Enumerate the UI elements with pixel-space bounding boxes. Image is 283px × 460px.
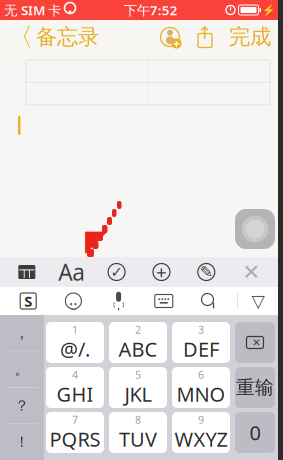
staticText: JKL (124, 381, 151, 407)
staticText: DEF (183, 336, 219, 362)
button[interactable]: 6 (172, 367, 230, 408)
staticText: MNO (176, 381, 225, 407)
button[interactable]: 语音输入 (102, 287, 136, 315)
staticText: 5 (135, 368, 141, 382)
button[interactable]: 手写 (188, 257, 224, 287)
button[interactable]: 清单 (99, 257, 135, 287)
button[interactable]: 共享 (188, 21, 222, 52)
staticText: ✓ (111, 264, 123, 280)
button[interactable]: 5 (109, 367, 167, 408)
staticText: + (173, 35, 180, 51)
button[interactable]: 辅助触控 (235, 209, 275, 249)
button[interactable]: 7 (46, 412, 104, 453)
staticText: ✕ (252, 336, 261, 348)
staticText: 7 (72, 413, 78, 427)
staticText: 完成 (229, 24, 271, 50)
button[interactable]: ， (0, 315, 44, 351)
staticText: 6 (198, 368, 204, 382)
staticText: ？ (14, 397, 29, 415)
staticText: 2 (135, 323, 141, 337)
staticText: 1 (72, 323, 78, 337)
button[interactable]: 键盘设置 (147, 287, 181, 315)
staticText: S (24, 291, 32, 311)
staticText: GHI (56, 381, 93, 407)
button[interactable]: 删除 (235, 322, 275, 363)
button[interactable]: ？ (0, 388, 44, 423)
button[interactable]: 添加协作者 (152, 20, 188, 54)
staticText: WXYZ (174, 426, 227, 452)
staticText: ！ (14, 433, 29, 451)
staticText: TUV (119, 426, 157, 452)
staticText: ABC (118, 336, 157, 362)
button[interactable]: 关闭 (233, 257, 269, 287)
button[interactable]: 0 (235, 412, 275, 453)
staticText: ▽ (251, 291, 264, 311)
button[interactable]: 4 (46, 367, 104, 408)
staticText: Aa (58, 257, 85, 287)
staticText: + (156, 260, 167, 284)
staticText: 。 (14, 360, 29, 378)
button[interactable]: 格式 (54, 257, 90, 287)
staticText: ↑ (197, 23, 212, 43)
button[interactable]: 完成 (222, 19, 278, 55)
button[interactable]: 添加 (143, 257, 179, 287)
staticText: ， (14, 324, 29, 342)
staticText: ⚡ (262, 4, 275, 16)
staticText: 备忘录 (36, 24, 99, 50)
button[interactable]: 9 (172, 412, 230, 453)
button[interactable]: 3 (172, 322, 230, 363)
button[interactable]: 2 (109, 322, 167, 363)
button[interactable]: ！ (0, 424, 44, 460)
staticText: 3 (198, 323, 204, 337)
staticText: ◤ (85, 224, 108, 257)
button[interactable]: 表情 (56, 287, 90, 315)
staticText: 4 (72, 368, 78, 382)
button[interactable]: 。 (0, 352, 44, 387)
staticText: 重输 (236, 376, 274, 399)
button[interactable]: 表格 (9, 257, 45, 287)
button[interactable]: 8 (109, 412, 167, 453)
button[interactable]: 〈 (0, 16, 99, 57)
button[interactable]: 搜狗输入法 (11, 287, 45, 315)
button[interactable]: 重输 (235, 367, 275, 408)
staticText: ✕ (242, 260, 260, 284)
button[interactable]: 收起键盘 (238, 287, 278, 315)
staticText: 〈 (8, 21, 33, 52)
staticText: 0 (249, 419, 260, 446)
staticText: ‥ (69, 288, 78, 310)
button[interactable]: 搜索 (192, 287, 226, 315)
staticText: ✎ (200, 263, 213, 281)
staticText: @/. (60, 336, 90, 362)
staticText: 8 (135, 413, 141, 427)
staticText: 9 (198, 413, 204, 427)
button[interactable]: 1 (46, 322, 104, 363)
staticText: ‿ (70, 296, 76, 310)
staticText: 无 SIM 卡 (4, 1, 61, 19)
staticText: 下午7:52 (124, 1, 178, 19)
staticText: PQRS (49, 426, 100, 452)
